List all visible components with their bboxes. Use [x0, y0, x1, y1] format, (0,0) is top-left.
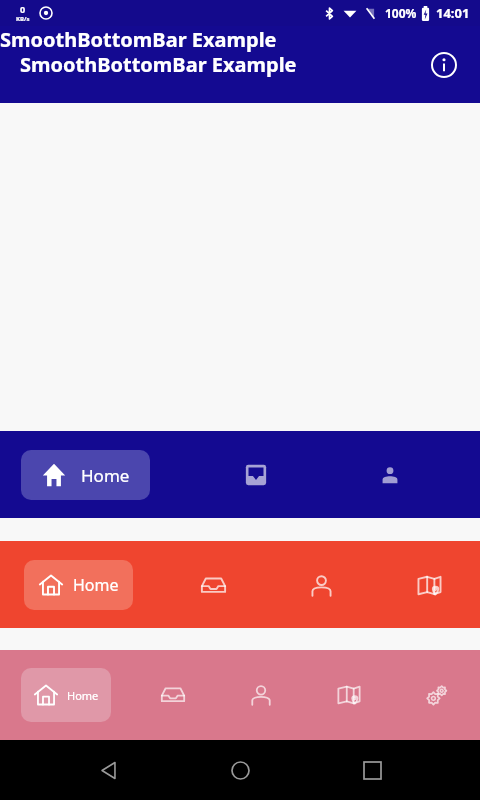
staticText: KB/s: [16, 15, 30, 23]
button[interactable]: Map: [324, 670, 374, 720]
button[interactable]: Recents: [348, 746, 396, 794]
staticText: Home: [81, 464, 130, 487]
button[interactable]: Home: [21, 450, 150, 500]
button[interactable]: Back: [84, 746, 132, 794]
button[interactable]: Home: [216, 746, 264, 794]
staticText: Home: [73, 574, 119, 596]
staticText: Home: [67, 688, 99, 703]
staticText: SmoothBottomBar Example: [20, 51, 297, 78]
button[interactable]: Settings: [412, 670, 462, 720]
button[interactable]: Home: [24, 560, 133, 610]
button[interactable]: Home: [21, 668, 111, 722]
staticText: 0: [20, 3, 26, 15]
staticText: SmoothBottomBar Example: [0, 26, 277, 53]
button[interactable]: Profile: [236, 670, 286, 720]
button[interactable]: Info: [424, 45, 464, 85]
button[interactable]: Profile: [294, 558, 348, 612]
button[interactable]: Inbox: [186, 558, 240, 612]
button[interactable]: Profile: [362, 447, 418, 503]
staticText: 100%: [385, 5, 417, 21]
staticText: 14:01: [436, 4, 470, 22]
button[interactable]: Map: [402, 558, 456, 612]
button[interactable]: Inbox: [148, 670, 198, 720]
button[interactable]: Inbox: [228, 447, 284, 503]
